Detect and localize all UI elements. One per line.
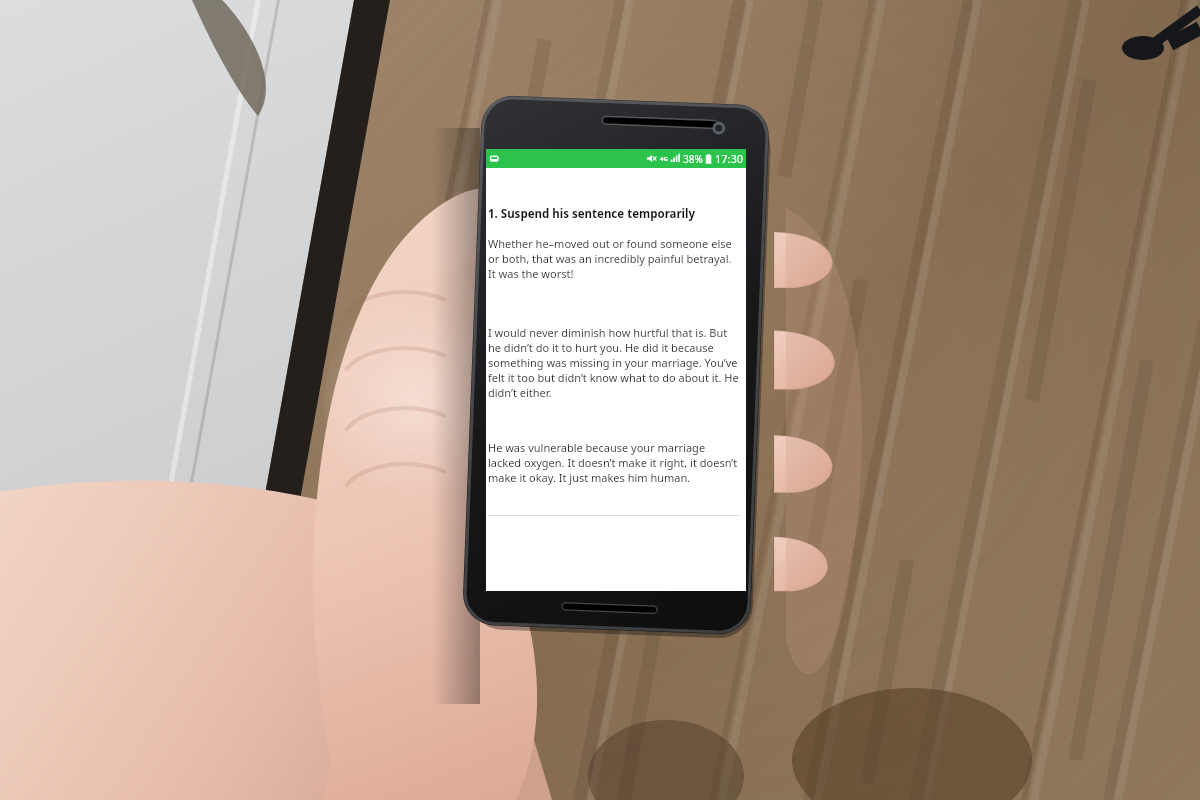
- other: Notification: [489, 153, 500, 164]
- staticText: 38%: [683, 152, 703, 166]
- staticText: He was vulnerable because your marriage …: [488, 440, 740, 485]
- staticText: 17:30: [715, 151, 744, 166]
- button[interactable]: 1. Suspend his sentence temporarily: [486, 168, 746, 591]
- staticText: I would never diminish how hurtful that …: [488, 325, 740, 400]
- staticText: 1. Suspend his sentence temporarily: [488, 206, 696, 222]
- staticText: 4G: [660, 155, 668, 163]
- staticText: Whether he–moved out or found someone el…: [488, 236, 740, 281]
